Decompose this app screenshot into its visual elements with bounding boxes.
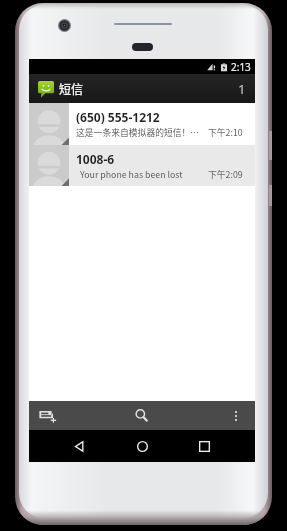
staticText: 这是一条来自模拟器的短信！！… — [76, 126, 205, 139]
staticText: 1008-6 — [76, 151, 115, 167]
button[interactable]: 1008-6 — [29, 145, 255, 186]
button[interactable]: Home — [125, 430, 159, 462]
button[interactable]: Recents — [187, 430, 221, 462]
button[interactable]: New message — [30, 401, 66, 430]
button[interactable]: Search — [124, 401, 160, 430]
button[interactable]: Back — [62, 430, 96, 462]
staticText: 下午2:10 — [208, 126, 243, 139]
staticText: Your phone has been lost — [76, 168, 205, 181]
staticText: 下午2:09 — [208, 168, 243, 181]
staticText: 2:13 — [231, 60, 251, 74]
staticText: 1 — [238, 80, 246, 98]
staticText: (650) 555-1212 — [76, 109, 160, 125]
button[interactable]: (650) 555-1212 — [29, 103, 255, 145]
staticText: 短信 — [59, 80, 84, 97]
button[interactable]: More options — [218, 401, 254, 430]
